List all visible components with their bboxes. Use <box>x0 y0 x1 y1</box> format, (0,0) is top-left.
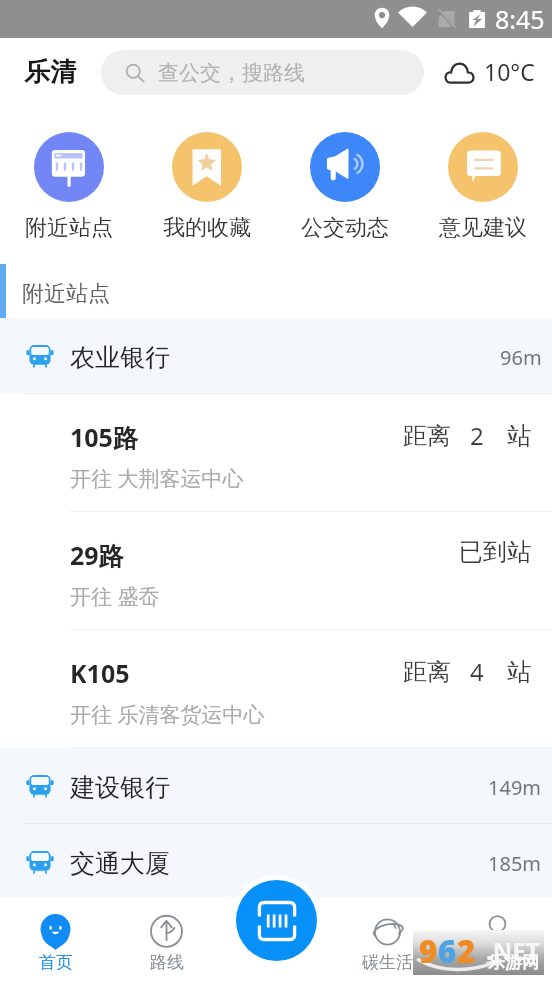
staticText: 乐游网 <box>488 952 539 973</box>
button[interactable]: 查公交，搜路线 <box>101 50 424 95</box>
staticText: 公交动态 <box>301 214 389 242</box>
button[interactable]: 我的收藏 <box>138 106 276 242</box>
staticText: 6 <box>438 930 457 972</box>
button[interactable]: 交通大厦 <box>0 824 552 900</box>
staticText: K105 <box>70 656 130 690</box>
staticText: 意见建议 <box>439 214 527 242</box>
staticText: 我的 <box>480 952 514 973</box>
staticText: 开往 盛岙 <box>70 582 160 611</box>
staticText: 开往 乐清客货运中心 <box>70 700 265 729</box>
button[interactable]: 10°C <box>443 56 535 89</box>
staticText: 距离 <box>403 657 451 687</box>
staticText: 10°C <box>484 56 535 87</box>
button[interactable]: 乐清 <box>24 56 76 89</box>
button[interactable]: 意见建议 <box>414 106 552 242</box>
button[interactable]: 公交动态 <box>276 106 414 242</box>
staticText: 105路 <box>70 420 138 454</box>
staticText: 2 <box>470 419 484 452</box>
staticText: 29路 <box>70 538 124 572</box>
button[interactable]: 附近站点 <box>0 106 138 242</box>
staticText: 已到站 <box>459 537 531 567</box>
button[interactable]: 29路 <box>0 512 552 630</box>
staticText: 路线 <box>150 952 184 973</box>
staticText: 9 <box>419 930 438 972</box>
button[interactable]: 碳生活 <box>332 897 442 973</box>
button[interactable]: K105 <box>0 630 552 748</box>
staticText: 185m <box>488 850 542 877</box>
staticText: 我的收藏 <box>163 214 251 242</box>
button[interactable]: 建设银行 <box>0 748 552 824</box>
staticText: 站 <box>507 657 531 687</box>
staticText: 建设银行 <box>70 772 170 803</box>
button[interactable]: 首页 <box>0 897 111 973</box>
staticText: 附近站点 <box>25 214 113 242</box>
staticText: 4 <box>470 655 484 688</box>
staticText: 交通大厦 <box>70 848 170 879</box>
button[interactable]: 扫一扫 <box>236 880 317 961</box>
button[interactable]: 农业银行 <box>0 318 552 394</box>
staticText: 附近站点 <box>22 280 110 308</box>
staticText: 96m <box>500 344 542 371</box>
staticText: .NET <box>486 934 540 967</box>
staticText: 149m <box>488 774 542 801</box>
staticText: 查公交，搜路线 <box>158 60 305 86</box>
staticText: 碳生活 <box>362 952 413 973</box>
button[interactable]: 路线 <box>111 897 222 973</box>
button[interactable]: 105路 <box>0 394 552 512</box>
staticText: 首页 <box>39 952 73 973</box>
staticText: 2 <box>457 930 476 972</box>
staticText: 8:45 <box>495 2 545 36</box>
staticText: 农业银行 <box>70 342 170 373</box>
staticText: 站 <box>507 421 531 451</box>
button[interactable]: 我的 <box>442 897 552 973</box>
staticText: 开往 大荆客运中心 <box>70 464 244 493</box>
staticText: 距离 <box>403 421 451 451</box>
